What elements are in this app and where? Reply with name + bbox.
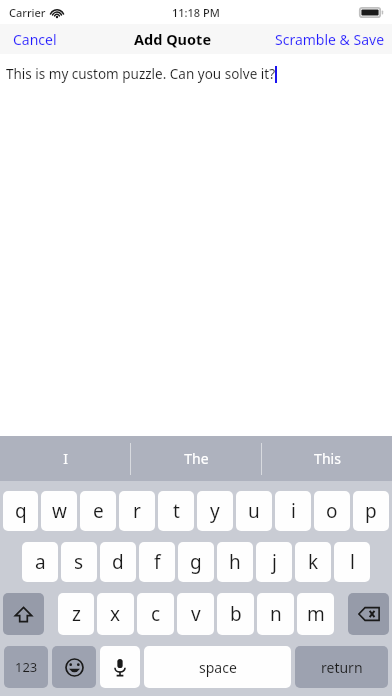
button[interactable]: f [139,542,175,582]
staticText: Scramble & Save [275,30,385,49]
staticText: c [151,601,161,627]
staticText: i [291,498,296,524]
staticText: d [112,549,124,575]
button[interactable]: Emoji [52,646,96,688]
button[interactable]: g [178,542,214,582]
staticText: z [72,601,81,627]
staticText: b [230,601,242,627]
staticText: a [35,549,46,575]
button[interactable]: Backspace [348,593,389,635]
staticText: h [229,549,241,575]
staticText: j [272,549,277,575]
button[interactable]: I [0,436,130,481]
button[interactable]: s [61,542,97,582]
button[interactable]: l [334,542,370,582]
button[interactable]: Dictation [100,646,140,688]
staticText: y [210,498,220,524]
button[interactable]: x [97,593,134,635]
staticText: x [110,601,121,627]
staticText: q [15,498,27,524]
button[interactable]: p [353,491,389,531]
staticText: Add Quote [134,29,212,49]
button[interactable]: w [41,491,77,531]
staticText: w [52,498,67,524]
button[interactable]: t [158,491,194,531]
button[interactable]: space [144,646,291,688]
button[interactable]: n [257,593,294,635]
button[interactable]: 123 [4,646,48,688]
button[interactable]: h [217,542,253,582]
staticText: t [173,498,180,524]
staticText: m [307,601,325,627]
staticText: Carrier [9,5,46,20]
button[interactable]: k [295,542,331,582]
staticText: space [199,658,237,677]
staticText: u [248,498,260,524]
staticText: k [308,549,319,575]
button[interactable]: return [295,646,388,688]
staticText: s [74,549,84,575]
staticText: n [270,601,282,627]
staticText: This is my custom puzzle. Can you solve … [6,65,275,83]
button[interactable]: a [22,542,58,582]
button[interactable]: Cancel [0,25,70,54]
staticText: 11:18 PM [172,5,220,20]
button[interactable]: b [217,593,254,635]
staticText: return [321,658,363,677]
staticText: e [93,498,104,524]
staticText: This [314,449,341,468]
button[interactable]: z [58,593,94,635]
button[interactable]: m [297,593,334,635]
button[interactable]: o [314,491,350,531]
button[interactable]: v [177,593,214,635]
button[interactable]: y [197,491,233,531]
button[interactable]: The [131,436,261,481]
button[interactable]: d [100,542,136,582]
staticText: o [326,498,338,524]
staticText: l [350,549,355,575]
staticText: g [190,549,202,575]
button[interactable]: u [236,491,272,531]
staticText: The [184,449,209,468]
staticText: p [365,498,377,524]
staticText: f [154,549,161,575]
button[interactable]: Shift [3,593,44,635]
button[interactable]: q [3,491,38,531]
button[interactable]: i [275,491,311,531]
staticText: r [133,498,141,524]
staticText: Cancel [13,30,57,49]
button[interactable]: Scramble & Save [268,25,392,54]
button[interactable]: c [137,593,174,635]
button[interactable]: This [262,436,392,481]
staticText: 123 [15,658,38,676]
button[interactable]: r [119,491,155,531]
button[interactable]: e [80,491,116,531]
button[interactable]: j [256,542,292,582]
staticText: I [63,449,68,468]
staticText: v [191,601,201,627]
